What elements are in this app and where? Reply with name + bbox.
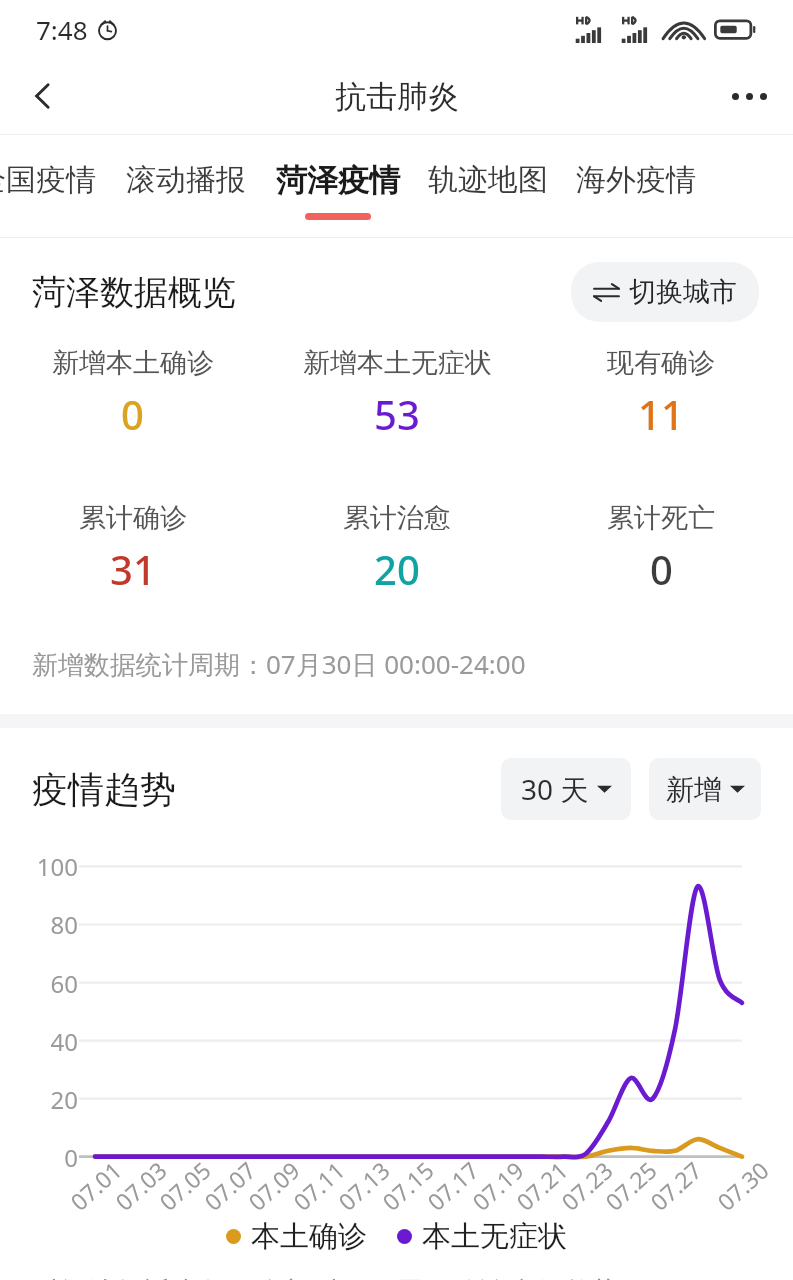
- button[interactable]: 切换城市: [571, 262, 759, 322]
- button[interactable]: 海外疫情: [576, 134, 696, 219]
- staticText: 0: [26, 1141, 78, 1174]
- button[interactable]: 现有确诊: [529, 346, 793, 441]
- staticText: 07.15: [375, 1154, 440, 1217]
- staticText: 菏泽疫情: [276, 161, 400, 200]
- staticText: 7:48: [36, 12, 88, 47]
- button[interactable]: 全国疫情: [0, 134, 96, 219]
- button[interactable]: 累计死亡: [529, 501, 793, 596]
- staticText: 海外疫情: [576, 161, 696, 199]
- staticText: 80: [26, 908, 78, 941]
- staticText: 切换城市: [629, 275, 737, 309]
- button[interactable]: Back: [16, 69, 70, 123]
- staticText: 0: [650, 542, 673, 596]
- staticText: 时间选择近半年、全部时，仅展示确诊病例趋势图: [32, 1275, 648, 1280]
- button[interactable]: 菏泽疫情: [276, 134, 400, 220]
- staticText: 07.17: [420, 1154, 485, 1217]
- button[interactable]: 新增: [649, 758, 761, 820]
- staticText: 07.01: [63, 1154, 128, 1217]
- staticText: 本土确诊: [251, 1218, 367, 1255]
- staticText: 菏泽数据概览: [32, 271, 236, 314]
- staticText: 07.13: [331, 1154, 396, 1217]
- staticText: 抗击肺炎: [335, 77, 459, 116]
- staticText: 20: [374, 542, 420, 596]
- staticText: 60: [26, 967, 78, 1000]
- button[interactable]: More options: [721, 68, 777, 124]
- staticText: 07.25: [598, 1154, 663, 1217]
- button[interactable]: 轨迹地图: [428, 134, 548, 219]
- button[interactable]: 本土确诊: [226, 1218, 367, 1255]
- staticText: 0: [121, 387, 144, 441]
- button[interactable]: 累计治愈: [265, 501, 529, 596]
- staticText: 07.23: [554, 1154, 619, 1217]
- staticText: 新增: [666, 772, 722, 807]
- staticText: 07.27: [643, 1154, 708, 1217]
- staticText: 30 天: [521, 770, 589, 808]
- staticText: 累计确诊: [79, 501, 187, 535]
- staticText: 滚动播报: [126, 161, 246, 199]
- staticText: 07.03: [108, 1154, 173, 1217]
- button[interactable]: 滚动播报: [126, 134, 246, 219]
- staticText: 现有确诊: [607, 346, 715, 380]
- button[interactable]: 新增本土无症状: [265, 346, 529, 441]
- staticText: 07.09: [241, 1154, 306, 1217]
- staticText: 07.11: [286, 1154, 351, 1217]
- staticText: 20: [26, 1083, 78, 1116]
- staticText: 疫情趋势: [32, 767, 176, 812]
- staticText: 新增数据统计周期：07月30日 00:00-24:00: [32, 646, 526, 682]
- button[interactable]: 新增本土确诊: [0, 346, 265, 441]
- staticText: 31: [110, 542, 156, 596]
- staticText: 累计治愈: [343, 501, 451, 535]
- staticText: 新增本土确诊: [52, 346, 214, 380]
- staticText: 新增本土无症状: [303, 346, 492, 380]
- staticText: 轨迹地图: [428, 161, 548, 199]
- staticText: 40: [26, 1025, 78, 1058]
- button[interactable]: 累计确诊: [0, 501, 265, 596]
- staticText: 07.07: [197, 1154, 262, 1217]
- staticText: 07.05: [152, 1154, 217, 1217]
- staticText: 累计死亡: [607, 501, 715, 535]
- button[interactable]: 30 天: [501, 758, 631, 820]
- staticText: 本土无症状: [422, 1218, 567, 1255]
- staticText: 07.30: [710, 1154, 775, 1217]
- staticText: 07.19: [465, 1154, 530, 1217]
- staticText: 100: [26, 850, 78, 883]
- staticText: 53: [374, 387, 420, 441]
- staticText: 全国疫情: [0, 161, 96, 199]
- staticText: 11: [638, 387, 684, 441]
- staticText: 07.21: [509, 1154, 574, 1217]
- button[interactable]: 本土无症状: [397, 1218, 567, 1255]
